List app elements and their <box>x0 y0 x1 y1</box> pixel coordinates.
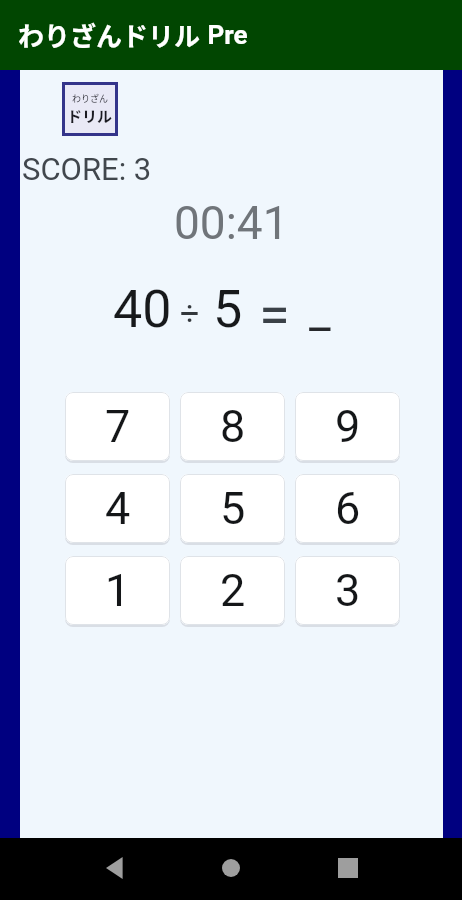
button[interactable] <box>196 838 266 900</box>
staticText: わりざん <box>72 92 109 105</box>
button[interactable]: 4 <box>65 474 170 543</box>
button[interactable]: 3 <box>295 556 400 625</box>
staticText: 40 <box>113 279 172 340</box>
button[interactable]: 7 <box>65 392 170 461</box>
button[interactable] <box>313 838 383 900</box>
staticText: ÷ <box>180 293 200 333</box>
button[interactable]: 8 <box>180 392 285 461</box>
staticText: Pre <box>201 20 248 50</box>
staticText: 3 <box>335 564 361 617</box>
staticText: ドリル <box>67 105 113 127</box>
button[interactable]: 5 <box>180 474 285 543</box>
button[interactable]: 1 <box>65 556 170 625</box>
staticText: 7 <box>105 400 131 453</box>
staticText: = <box>259 282 290 348</box>
button[interactable]: わりざん <box>62 82 118 136</box>
button[interactable]: 9 <box>295 392 400 461</box>
staticText: わりざんドリル <box>18 16 201 54</box>
staticText: _ <box>309 282 331 338</box>
button[interactable]: 6 <box>295 474 400 543</box>
staticText: 5 <box>213 279 243 340</box>
staticText: SCORE: 3 <box>22 151 152 187</box>
button[interactable] <box>80 838 150 900</box>
staticText: 6 <box>335 482 361 535</box>
staticText: 9 <box>335 400 361 453</box>
staticText: 5 <box>220 482 246 535</box>
staticText: 4 <box>105 482 131 535</box>
staticText: 8 <box>220 400 246 453</box>
staticText: 2 <box>220 564 246 617</box>
staticText: 1 <box>105 564 131 617</box>
staticText: 00:41 <box>174 196 289 250</box>
button[interactable]: 2 <box>180 556 285 625</box>
